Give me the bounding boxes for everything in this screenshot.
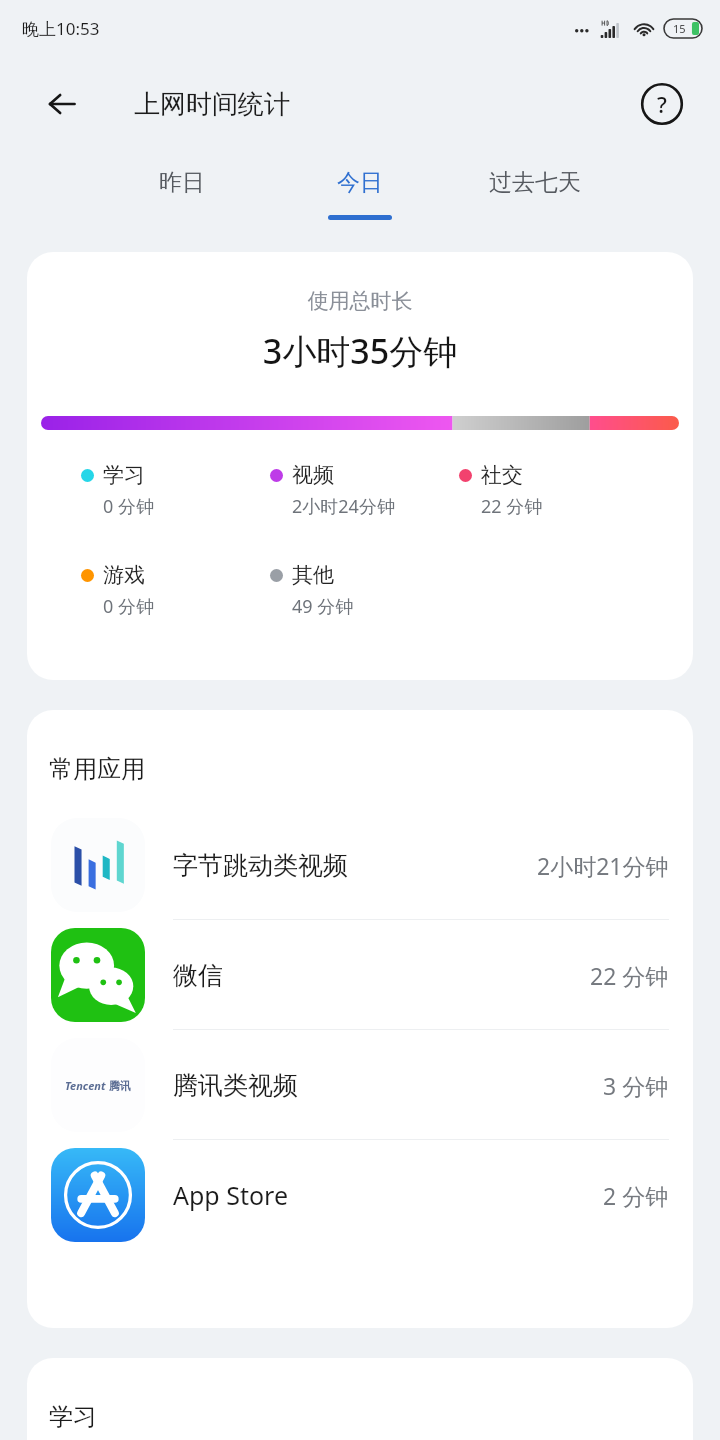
staticText: 0 分钟 — [103, 594, 154, 619]
staticText: 常用应用 — [49, 754, 145, 784]
staticText: 视频 — [292, 462, 334, 488]
staticText: 晚上10:53 — [22, 17, 100, 40]
staticText: 今日 — [337, 168, 383, 197]
staticText: 使用总时长 — [27, 288, 693, 314]
staticText: 3小时35分钟 — [27, 328, 693, 374]
staticText: 微信 — [173, 960, 223, 991]
button[interactable]: 今日 — [305, 152, 415, 240]
staticText: 腾讯类视频 — [173, 1070, 298, 1101]
staticText: Tencent — [65, 1078, 106, 1093]
staticText: 游戏 — [103, 562, 145, 588]
button[interactable]: App Store — [27, 1140, 693, 1250]
staticText: ? — [657, 89, 667, 119]
staticText: 15 — [673, 21, 686, 36]
staticText: App Store — [173, 1178, 289, 1212]
staticText: 学习 — [103, 462, 145, 488]
staticText: 昨日 — [159, 168, 205, 197]
staticText: 2小时21分钟 — [537, 850, 669, 881]
staticText: 49 分钟 — [292, 594, 354, 619]
staticText: 2小时24分钟 — [292, 494, 395, 519]
button[interactable]: 微信 — [27, 920, 693, 1030]
button[interactable]: Help — [638, 80, 686, 128]
staticText: 社交 — [481, 462, 523, 488]
staticText: 2 分钟 — [603, 1180, 669, 1211]
staticText: 腾讯 — [109, 1079, 131, 1093]
button[interactable]: 过去七天 — [460, 152, 610, 240]
staticText: 22 分钟 — [481, 494, 543, 519]
staticText: 学习 — [49, 1402, 97, 1432]
staticText: 3 分钟 — [603, 1070, 669, 1101]
button[interactable]: Tencent — [27, 1030, 693, 1140]
button[interactable]: Back — [40, 82, 84, 126]
button[interactable]: 昨日 — [127, 152, 237, 240]
staticText: 0 分钟 — [103, 494, 154, 519]
staticText: 上网时间统计 — [134, 88, 290, 121]
staticText: 过去七天 — [489, 168, 581, 197]
staticText: 其他 — [292, 562, 334, 588]
staticText: 字节跳动类视频 — [173, 850, 348, 881]
staticText: 22 分钟 — [590, 960, 669, 991]
button[interactable]: 字节跳动类视频 — [27, 810, 693, 920]
